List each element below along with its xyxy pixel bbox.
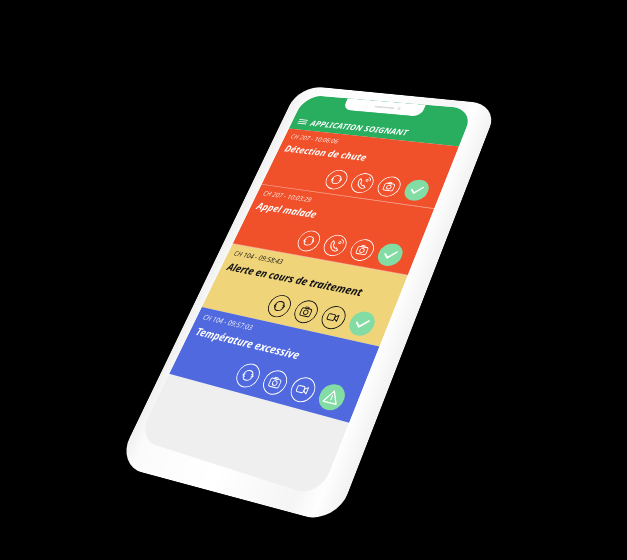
button[interactable]: CH 104 - 09:57:03 [0,327,245,417]
button[interactable]: Alert [199,380,229,410]
button[interactable]: CH 104 - 09:58:43 [0,237,245,327]
button[interactable]: CH 207 - 10:03:29 [0,147,245,237]
button[interactable]: Accept [199,290,229,320]
button[interactable]: Photo [125,380,155,410]
button[interactable]: Video [162,290,192,320]
